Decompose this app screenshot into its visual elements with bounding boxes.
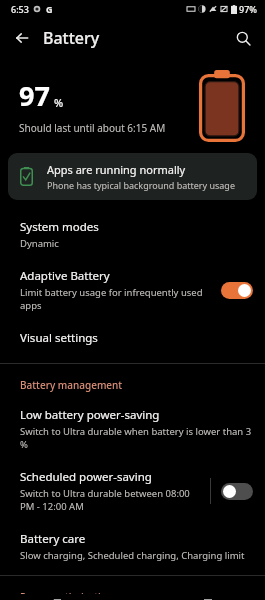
- button[interactable]: Apps are running normally: [8, 153, 257, 200]
- staticText: 97: [19, 77, 50, 114]
- staticText: %: [54, 95, 64, 110]
- button[interactable]: Scheduled power-saving toggle, off: [221, 483, 253, 500]
- staticText: Battery care: [20, 531, 86, 547]
- staticText: Scheduled power-saving: [20, 469, 152, 485]
- staticText: Battery management: [20, 378, 265, 392]
- button[interactable]: Visual settings: [0, 321, 265, 355]
- staticText: Phone has typical background battery usa…: [47, 179, 235, 191]
- button[interactable]: Adaptive Battery toggle, on: [221, 282, 253, 299]
- staticText: 97%: [239, 3, 257, 15]
- staticText: 6:53: [11, 3, 29, 15]
- staticText: Adaptive Battery: [20, 268, 110, 284]
- button[interactable]: Low battery power-saving: [0, 398, 265, 460]
- button[interactable]: Back: [6, 22, 38, 54]
- staticText: Power optimization: [20, 590, 265, 594]
- staticText: G: [46, 3, 53, 15]
- staticText: Low battery power-saving: [20, 407, 160, 423]
- staticText: Apps are running normally: [47, 162, 186, 177]
- button[interactable]: Adaptive Battery: [0, 259, 265, 321]
- staticText: Switch to Ultra durable between 08:00 PM…: [20, 487, 204, 513]
- staticText: Should last until about 6:15 AM: [19, 121, 166, 135]
- staticText: Slow charging, Scheduled charging, Charg…: [20, 549, 245, 562]
- button[interactable]: Battery care: [0, 522, 265, 571]
- button[interactable]: System modes: [0, 210, 265, 259]
- staticText: Dynamic: [20, 237, 59, 250]
- staticText: Limit battery usage for infrequently use…: [20, 286, 215, 312]
- staticText: Switch to Ultra durable when battery is …: [20, 425, 253, 451]
- button[interactable]: Search: [227, 22, 259, 54]
- staticText: System modes: [20, 219, 99, 235]
- staticText: Battery: [43, 27, 100, 49]
- staticText: Visual settings: [20, 330, 98, 346]
- button[interactable]: Scheduled power-saving: [0, 460, 265, 522]
